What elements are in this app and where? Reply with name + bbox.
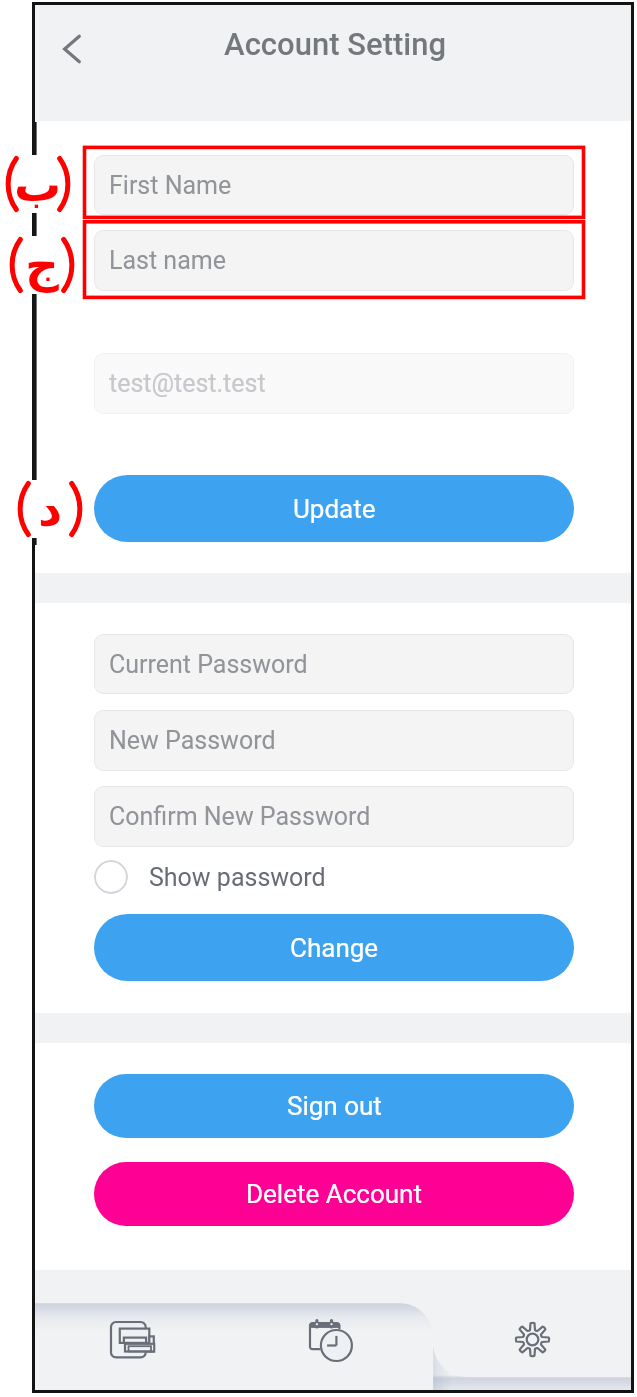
button[interactable]: Confirm New Password — [94, 786, 574, 847]
button[interactable]: Documents — [35, 1270, 233, 1390]
staticText: Show password — [149, 863, 326, 892]
button[interactable]: Last name — [94, 230, 574, 291]
button[interactable]: Delete Account — [94, 1162, 574, 1226]
button[interactable]: Settings — [432, 1270, 631, 1390]
button[interactable]: First Name — [94, 155, 574, 215]
staticText: First Name — [109, 171, 232, 200]
button[interactable]: Back — [39, 17, 103, 81]
staticText: ب — [14, 157, 62, 212]
button[interactable]: Current Password — [94, 634, 574, 694]
staticText: ج — [25, 238, 59, 293]
staticText: New Password — [109, 726, 276, 755]
staticText: test@test.test — [109, 369, 266, 398]
staticText: Current Password — [109, 650, 308, 679]
staticText: د — [38, 482, 63, 537]
staticText: Sign out — [287, 1091, 382, 1121]
staticText: Confirm New Password — [109, 802, 371, 831]
button[interactable]: Schedule — [233, 1270, 432, 1390]
button[interactable]: Update — [94, 475, 574, 542]
button[interactable]: Sign out — [94, 1074, 574, 1138]
staticText: Last name — [109, 246, 226, 275]
staticText: Change — [290, 933, 379, 963]
button[interactable]: Show password — [94, 857, 326, 897]
button[interactable]: New Password — [94, 710, 574, 771]
staticText: Delete Account — [246, 1179, 422, 1209]
staticText: Update — [293, 494, 376, 524]
button[interactable]: Change — [94, 914, 574, 981]
staticText: Account Setting — [224, 26, 447, 62]
button[interactable]: test@test.test — [94, 353, 574, 414]
